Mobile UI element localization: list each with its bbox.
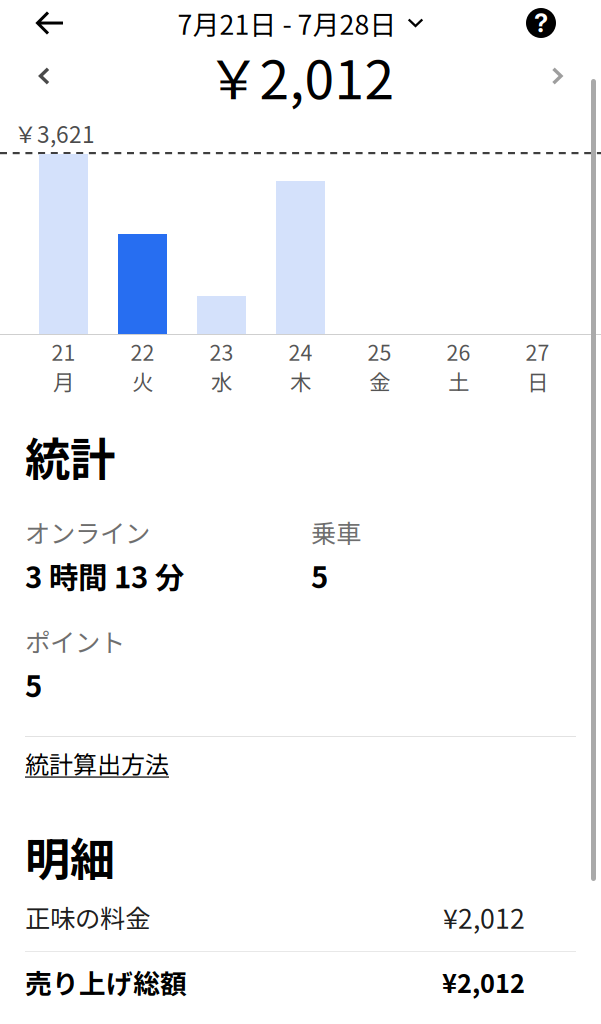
button[interactable]: Help: [518, 0, 564, 46]
staticText: ￥3,621: [14, 117, 95, 149]
staticText: 27: [525, 336, 549, 367]
button[interactable]: 統計算出方法: [25, 747, 169, 779]
staticText: 火: [132, 366, 153, 396]
button[interactable]: Back: [22, 0, 78, 46]
staticText: 3 時間 13 分: [25, 554, 184, 597]
staticText: ポイント: [25, 623, 125, 659]
staticText: ￥2,012: [206, 37, 394, 115]
staticText: 22: [130, 336, 154, 367]
staticText: ?: [534, 8, 548, 38]
staticText: 5: [25, 663, 42, 706]
staticText: 売り上げ総額: [25, 963, 187, 1001]
staticText: ¥2,012: [443, 898, 525, 936]
staticText: オンライン: [25, 514, 150, 550]
staticText: 月: [53, 366, 74, 396]
staticText: 24: [288, 336, 312, 367]
staticText: 統計算出方法: [25, 746, 169, 780]
staticText: 水: [211, 366, 232, 396]
staticText: 木: [290, 366, 311, 396]
button[interactable]: Previous week: [22, 50, 66, 110]
staticText: 5: [311, 554, 328, 597]
staticText: 明細: [25, 823, 115, 889]
staticText: 21: [51, 336, 75, 367]
staticText: 7月21日 - 7月28日: [177, 4, 396, 42]
button[interactable]: Next week: [535, 50, 579, 110]
staticText: 統計: [25, 423, 115, 489]
staticText: 乗車: [311, 514, 361, 550]
staticText: 正味の料金: [25, 899, 150, 935]
staticText: 金: [369, 366, 390, 396]
button[interactable]: 7月21日 - 7月28日: [177, 0, 423, 46]
staticText: 日: [527, 366, 548, 396]
staticText: ¥2,012: [442, 964, 525, 1000]
staticText: 25: [367, 336, 391, 367]
staticText: 23: [209, 336, 233, 367]
staticText: 土: [448, 366, 469, 396]
staticText: 26: [446, 336, 470, 367]
